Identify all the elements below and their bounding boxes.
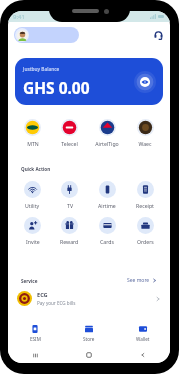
staticText: Telecel bbox=[61, 140, 78, 147]
button[interactable]: Justbuy Balance bbox=[15, 58, 163, 105]
button[interactable]: Orders bbox=[126, 217, 164, 245]
staticText: Quick Action bbox=[21, 166, 51, 172]
button[interactable]: Airtime bbox=[88, 181, 126, 209]
button[interactable]: TV bbox=[51, 181, 88, 209]
staticText: Pay your ECG bills bbox=[37, 300, 76, 306]
staticText: ECG bbox=[37, 291, 48, 299]
staticText: TV bbox=[67, 202, 73, 209]
staticText: GHS 0.00 bbox=[23, 77, 90, 98]
staticText: MTN bbox=[27, 140, 39, 147]
staticText: AirtelTigo bbox=[95, 140, 119, 147]
button[interactable]: ESIM bbox=[8, 320, 62, 346]
button[interactable]: Invite bbox=[14, 217, 51, 245]
staticText: Waec bbox=[138, 140, 152, 147]
button[interactable]: Wallet bbox=[116, 320, 170, 346]
button[interactable]: AirtelTigo bbox=[88, 119, 126, 147]
button[interactable] bbox=[14, 27, 79, 43]
button[interactable]: Receipt bbox=[126, 181, 164, 209]
staticText: Orders bbox=[137, 238, 154, 245]
button[interactable]: See more bbox=[127, 277, 157, 284]
staticText: 9:41 bbox=[13, 13, 25, 21]
button[interactable]: Telecel bbox=[51, 119, 88, 147]
button[interactable]: Show balance bbox=[134, 71, 156, 93]
button[interactable]: Home bbox=[62, 347, 116, 363]
button[interactable]: Reward bbox=[51, 217, 88, 245]
button[interactable]: Customer support bbox=[152, 29, 165, 42]
staticText: Wallet bbox=[136, 336, 150, 342]
button[interactable]: Cards bbox=[88, 217, 126, 245]
staticText: Store bbox=[83, 336, 95, 342]
staticText: Cards bbox=[100, 238, 114, 245]
button[interactable]: MTN bbox=[14, 119, 51, 147]
button[interactable]: Back bbox=[116, 347, 170, 363]
staticText: Airtime bbox=[98, 202, 116, 209]
button[interactable]: Utility bbox=[14, 181, 51, 209]
staticText: Invite bbox=[26, 238, 40, 245]
button[interactable]: Store bbox=[62, 320, 116, 346]
button[interactable]: ECG bbox=[17, 291, 161, 306]
staticText: Justbuy Balance bbox=[23, 66, 60, 73]
staticText: See more bbox=[127, 277, 150, 284]
button[interactable]: Recents bbox=[8, 347, 62, 363]
button[interactable]: Waec bbox=[126, 119, 164, 147]
staticText: Reward bbox=[60, 238, 79, 245]
staticText: Receipt bbox=[136, 202, 154, 209]
staticText: Utility bbox=[25, 202, 40, 209]
staticText: Service bbox=[21, 278, 38, 284]
staticText: ESIM bbox=[30, 336, 41, 342]
